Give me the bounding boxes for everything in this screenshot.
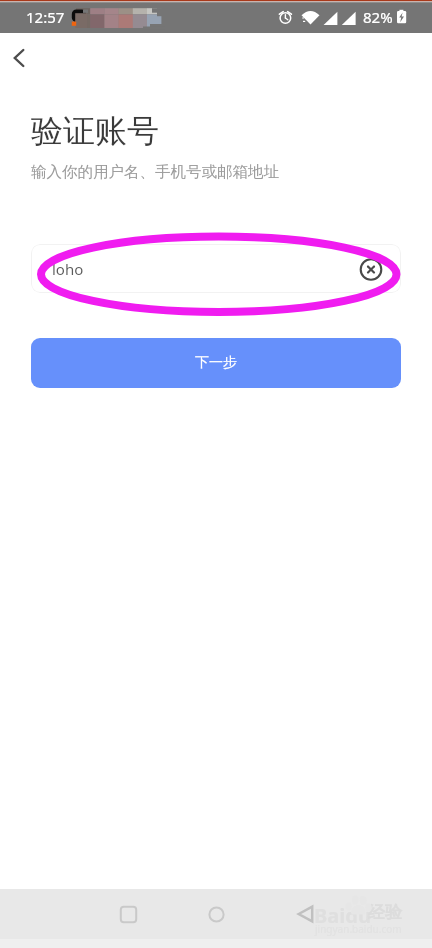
staticText: loho (52, 259, 84, 279)
staticText: 82% (363, 7, 393, 27)
staticText: Baidu (314, 902, 371, 929)
button[interactable]: Home (192, 895, 240, 933)
button[interactable]: Back (0, 37, 40, 77)
button[interactable]: Recent apps (104, 895, 152, 933)
staticText: 下一步 (195, 354, 237, 372)
button[interactable]: 下一步 (31, 338, 401, 388)
button[interactable]: Clear text (358, 256, 384, 282)
button[interactable]: loho (31, 244, 401, 293)
staticText: 12:57 (26, 7, 65, 27)
staticText: 验证账号 (31, 111, 159, 151)
button[interactable]: Back (281, 895, 329, 933)
staticText: 经验 (368, 902, 402, 923)
staticText: 输入你的用户名、手机号或邮箱地址 (31, 162, 279, 182)
